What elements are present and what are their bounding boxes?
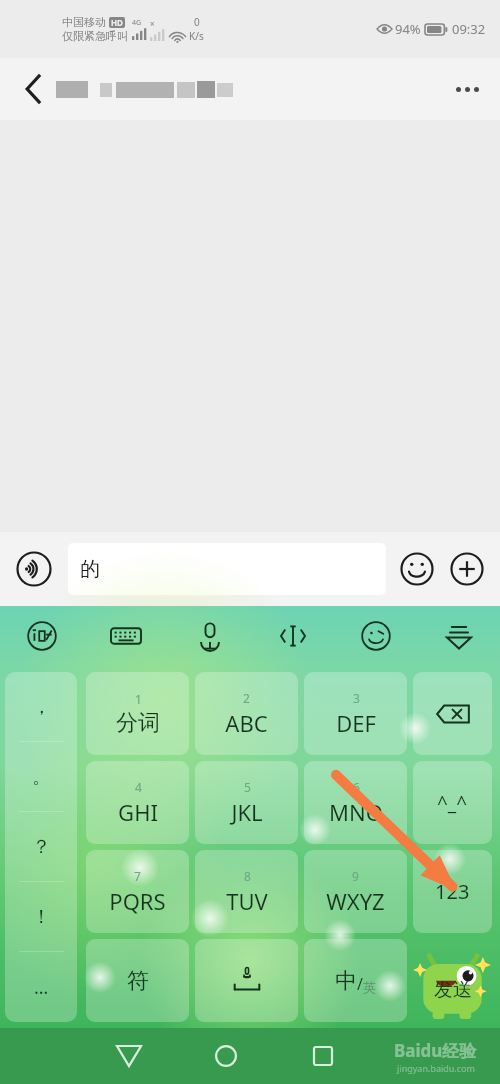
- button[interactable]: Keyboard layout: [84, 606, 168, 666]
- button[interactable]: ^_^: [413, 761, 492, 844]
- button[interactable]: 的: [68, 543, 386, 595]
- button[interactable]: Voice input: [168, 606, 251, 666]
- staticText: /: [357, 973, 363, 995]
- staticText: 中: [335, 967, 357, 995]
- button[interactable]: 。: [5, 742, 77, 812]
- button[interactable]: 中: [304, 939, 407, 1022]
- staticText: 发送: [434, 978, 472, 1002]
- staticText: ，: [32, 695, 51, 719]
- staticText: 0: [194, 15, 200, 29]
- staticText: jingyan.baidu.com: [397, 1062, 475, 1074]
- button[interactable]: Voice message: [10, 545, 58, 593]
- button[interactable]: More: [444, 546, 490, 592]
- button[interactable]: Hide keyboard: [417, 606, 500, 666]
- staticText: 94%: [395, 20, 421, 38]
- staticText: MNO: [329, 797, 383, 827]
- staticText: 123: [435, 878, 470, 905]
- staticText: 1: [135, 691, 142, 707]
- staticText: JKL: [231, 797, 263, 827]
- staticText: 3: [353, 690, 360, 706]
- staticText: 2: [243, 690, 250, 706]
- button[interactable]: 4: [86, 761, 189, 844]
- staticText: 4: [135, 779, 142, 795]
- staticText: 中国移动: [62, 15, 106, 29]
- button[interactable]: Recent apps: [274, 1028, 371, 1084]
- button[interactable]: 7: [86, 850, 189, 933]
- staticText: Baidu经验: [394, 1039, 477, 1062]
- staticText: 8: [244, 868, 251, 884]
- button[interactable]: Back: [10, 65, 58, 113]
- staticText: 6: [353, 779, 360, 795]
- button[interactable]: ！: [5, 882, 77, 952]
- staticText: ！: [32, 905, 51, 929]
- button[interactable]: 1: [86, 672, 189, 755]
- button[interactable]: Delete: [413, 672, 492, 755]
- staticText: 的: [80, 557, 100, 582]
- staticText: 英: [363, 979, 376, 995]
- staticText: ×: [150, 18, 155, 29]
- staticText: …: [34, 975, 49, 1000]
- staticText: 5: [244, 779, 251, 795]
- button[interactable]: Space: [195, 939, 298, 1022]
- button[interactable]: 9: [304, 850, 407, 933]
- button[interactable]: 发送: [413, 939, 492, 1022]
- staticText: PQRS: [109, 886, 166, 916]
- button[interactable]: 3: [304, 672, 407, 755]
- staticText: ？: [32, 835, 51, 859]
- button[interactable]: 5: [195, 761, 298, 844]
- button[interactable]: Home: [177, 1028, 274, 1084]
- button[interactable]: Emoji: [334, 606, 417, 666]
- button[interactable]: 8: [195, 850, 298, 933]
- button[interactable]: 6: [304, 761, 407, 844]
- staticText: K/s: [189, 29, 204, 43]
- staticText: GHI: [118, 797, 158, 827]
- button[interactable]: 2: [195, 672, 298, 755]
- button[interactable]: ？: [5, 812, 77, 882]
- staticText: DEF: [336, 708, 376, 738]
- staticText: TUV: [226, 886, 268, 916]
- button[interactable]: Input method: [0, 606, 84, 666]
- staticText: ^_^: [437, 790, 468, 816]
- staticText: 。: [32, 765, 51, 789]
- button[interactable]: 123: [413, 850, 492, 933]
- staticText: 仅限紧急呼叫: [62, 29, 128, 43]
- button[interactable]: ，: [5, 672, 77, 742]
- staticText: 4G: [132, 18, 142, 28]
- staticText: HD: [111, 17, 123, 28]
- button[interactable]: …: [5, 952, 77, 1022]
- button[interactable]: Edit cursor: [251, 606, 334, 666]
- staticText: 7: [134, 868, 141, 884]
- staticText: 分词: [116, 709, 160, 737]
- button[interactable]: Back: [80, 1028, 177, 1084]
- button[interactable]: Emoji: [394, 546, 440, 592]
- staticText: 符: [127, 967, 149, 995]
- staticText: ABC: [225, 708, 268, 738]
- button[interactable]: 符: [86, 939, 189, 1022]
- staticText: 09:32: [452, 20, 486, 38]
- staticText: WXYZ: [326, 886, 385, 916]
- button[interactable]: More options: [442, 64, 492, 114]
- staticText: 9: [352, 868, 359, 884]
